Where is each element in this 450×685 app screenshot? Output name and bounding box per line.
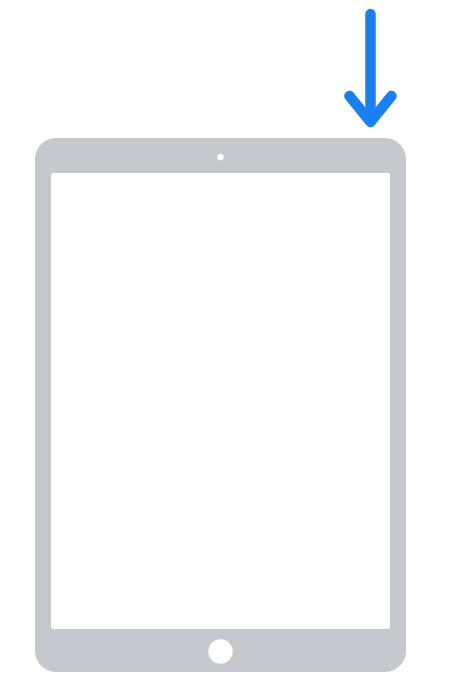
other: Swipe down from the top edge bbox=[0, 0, 450, 685]
button[interactable]: Tablet device illustration bbox=[0, 0, 450, 685]
